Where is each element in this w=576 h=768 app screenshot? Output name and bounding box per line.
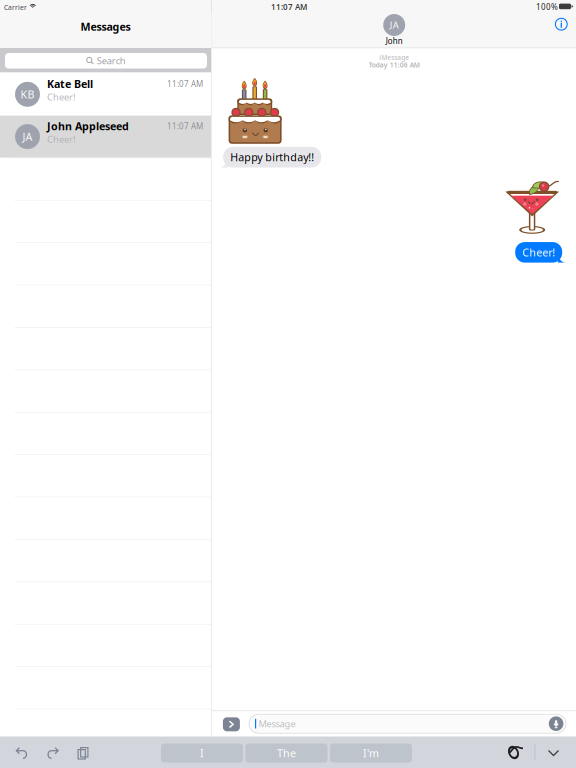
staticText: Happy birthday!! bbox=[230, 150, 314, 164]
staticText: KB bbox=[20, 87, 34, 101]
button[interactable]: I'm bbox=[330, 743, 412, 762]
staticText: Message bbox=[259, 717, 296, 730]
button[interactable]: Paste bbox=[73, 743, 93, 763]
staticText: The bbox=[277, 746, 296, 760]
staticText: Messages bbox=[80, 19, 130, 34]
staticText: I'm bbox=[363, 746, 379, 760]
staticText: John bbox=[386, 35, 403, 46]
button[interactable]: KB bbox=[0, 73, 211, 115]
button[interactable]: Details bbox=[549, 12, 573, 36]
staticText: iMessage bbox=[379, 53, 409, 62]
button[interactable]: App drawer bbox=[221, 715, 241, 733]
staticText: 11:07 AM bbox=[271, 2, 307, 12]
staticText: Search bbox=[97, 55, 126, 67]
staticText: Cheer! bbox=[47, 133, 76, 145]
staticText: 11:07 AM bbox=[167, 78, 203, 89]
button[interactable]: Handwriting bbox=[502, 742, 524, 762]
staticText: JA bbox=[390, 19, 399, 31]
button[interactable]: Redo bbox=[42, 743, 62, 763]
staticText: Cheer! bbox=[47, 91, 76, 103]
button[interactable]: Message field bbox=[249, 714, 566, 733]
staticText: 11:07 AM bbox=[167, 121, 203, 131]
staticText: Cheer! bbox=[522, 245, 555, 259]
staticText: Kate Bell bbox=[47, 77, 93, 91]
button[interactable]: JA bbox=[0, 116, 211, 158]
staticText: 100% bbox=[536, 2, 558, 12]
staticText: I bbox=[200, 746, 204, 760]
button[interactable]: I bbox=[161, 743, 243, 762]
button[interactable]: Hide keyboard bbox=[543, 743, 563, 763]
button[interactable]: The bbox=[245, 743, 327, 762]
staticText: John Appleseed bbox=[47, 119, 129, 133]
staticText: JA bbox=[22, 129, 32, 144]
button[interactable]: Undo bbox=[12, 743, 32, 763]
button[interactable]: Search bbox=[5, 53, 207, 68]
staticText: Carrier bbox=[4, 3, 27, 12]
staticText: Today 11:06 AM bbox=[369, 61, 420, 69]
